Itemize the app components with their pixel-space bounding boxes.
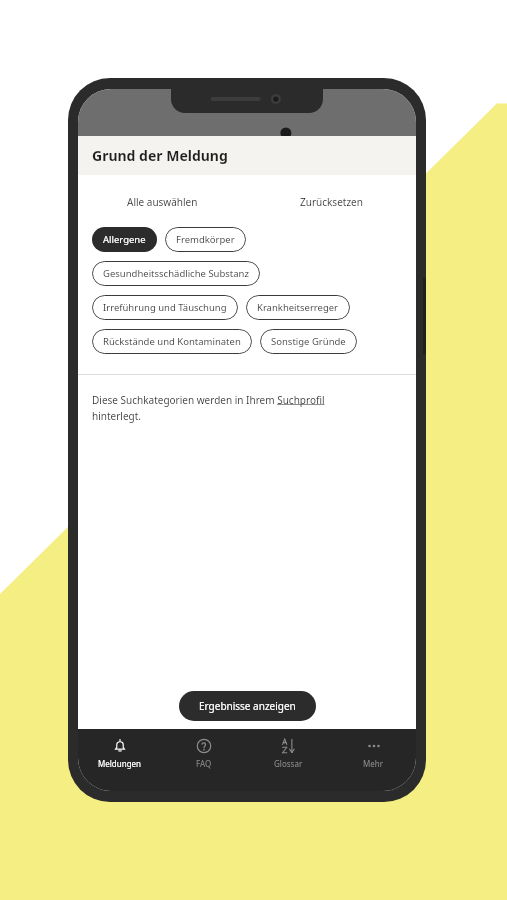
button[interactable]: Gesundheitsschädliche Substanz: [92, 261, 260, 286]
button[interactable]: Krankheitserreger: [246, 295, 350, 320]
button[interactable]: Fremdkörper: [165, 227, 246, 252]
button[interactable]: Rückstände und Kontaminaten: [92, 329, 252, 354]
button[interactable]: Ergebnisse anzeigen: [179, 691, 316, 721]
button[interactable]: Glossar: [246, 729, 331, 791]
button[interactable]: Allergene: [92, 227, 157, 252]
other: Mehr: [366, 738, 382, 754]
other: Meldungen: [112, 738, 128, 754]
button[interactable]: Sonstige Gründe: [260, 329, 357, 354]
staticText: Ergebnisse anzeigen: [199, 699, 296, 713]
staticText: Fremdkörper: [176, 233, 235, 246]
staticText: Mehr: [363, 758, 384, 769]
button[interactable]: Zurücksetzen: [247, 195, 416, 209]
staticText: Krankheitserreger: [257, 301, 339, 314]
button[interactable]: Irreführung und Täuschung: [92, 295, 238, 320]
staticText: Sonstige Gründe: [271, 335, 346, 348]
button[interactable]: Alle auswählen: [78, 195, 247, 209]
staticText: Diese Suchkategorien werden in Ihrem Suc…: [92, 393, 325, 422]
staticText: Glossar: [274, 758, 303, 769]
other: FAQ: [196, 738, 212, 754]
staticText: Alle auswählen: [127, 195, 198, 209]
button[interactable]: FAQ: [162, 729, 246, 791]
staticText: Grund der Meldung: [92, 146, 228, 165]
staticText: Rückstände und Kontaminaten: [103, 335, 241, 348]
staticText: FAQ: [196, 758, 212, 769]
staticText: Meldungen: [98, 758, 142, 769]
button[interactable]: Mehr: [331, 729, 416, 791]
staticText: Gesundheitsschädliche Substanz: [103, 267, 249, 280]
button[interactable]: Meldungen: [78, 729, 162, 791]
staticText: Allergene: [103, 233, 146, 246]
other: Glossar: [281, 738, 297, 754]
staticText: Zurücksetzen: [300, 195, 363, 209]
staticText: Irreführung und Täuschung: [103, 301, 227, 314]
